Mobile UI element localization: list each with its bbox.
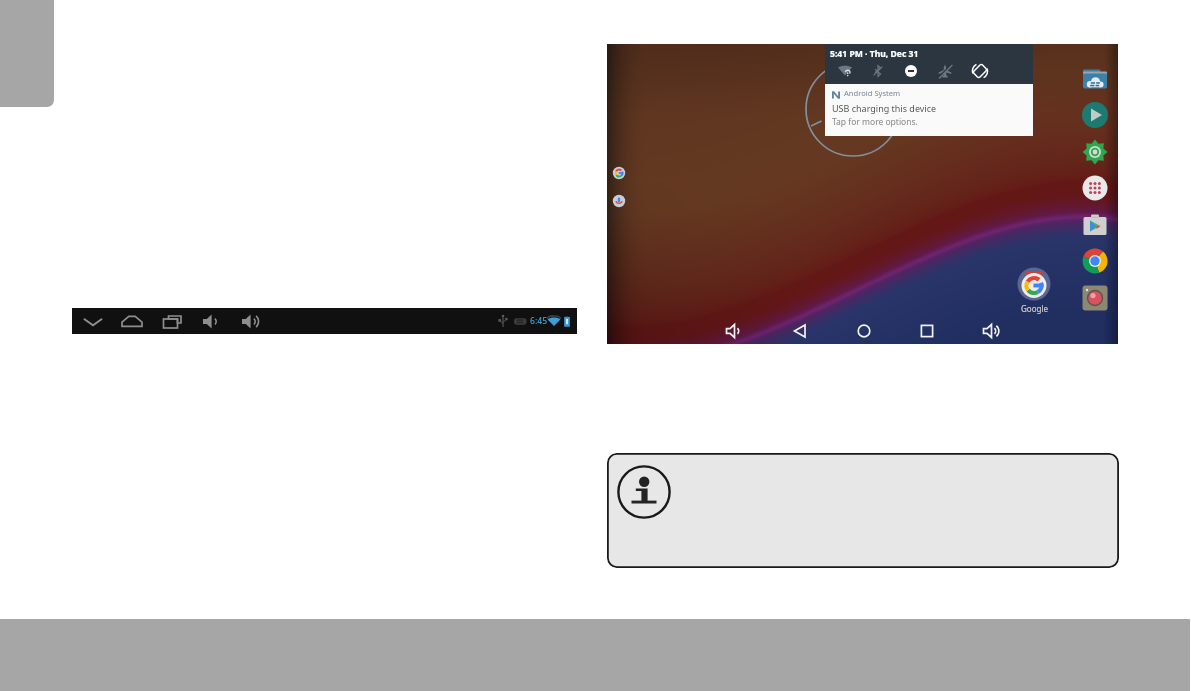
- button[interactable]: Bluetooth: [867, 60, 889, 82]
- button[interactable]: Recent apps: [913, 316, 941, 344]
- button[interactable]: MX Player: [1081, 101, 1109, 129]
- staticText: USB charging this device: [832, 102, 937, 114]
- button[interactable]: All apps: [1081, 174, 1109, 202]
- button[interactable]: Information note: [607, 453, 1119, 568]
- button[interactable]: Back: [786, 316, 814, 344]
- button[interactable]: Do not disturb: [900, 60, 922, 82]
- button[interactable]: Volume up: [237, 308, 263, 334]
- button[interactable]: Android System: [825, 84, 1033, 136]
- button[interactable]: Volume down: [198, 308, 224, 334]
- button[interactable]: Home: [119, 308, 145, 334]
- staticText: Google: [1021, 303, 1048, 314]
- button[interactable]: Home: [850, 316, 878, 344]
- button[interactable]: Recent apps: [159, 308, 185, 334]
- staticText: Tap for more options.: [832, 116, 918, 128]
- button[interactable]: Auto-rotate: [969, 60, 991, 82]
- button[interactable]: Play Store: [1081, 211, 1109, 239]
- button[interactable]: Camera: [1081, 284, 1109, 312]
- button[interactable]: Airplane mode: [934, 60, 956, 82]
- button[interactable]: Volume down: [720, 316, 748, 344]
- button[interactable]: Hide navigation bar: [80, 308, 106, 334]
- button[interactable]: Wi-Fi: [834, 60, 856, 82]
- staticText: 5:41 PM · Thu, Dec 31: [830, 48, 919, 60]
- button[interactable]: ES File Explorer: [1081, 65, 1109, 93]
- staticText: 6:45: [530, 315, 548, 327]
- staticText: Android System: [844, 88, 901, 98]
- button[interactable]: Chrome: [1081, 247, 1109, 275]
- button[interactable]: Google folder: [1012, 267, 1056, 314]
- button[interactable]: Volume up: [977, 316, 1005, 344]
- button[interactable]: Settings: [1081, 138, 1109, 166]
